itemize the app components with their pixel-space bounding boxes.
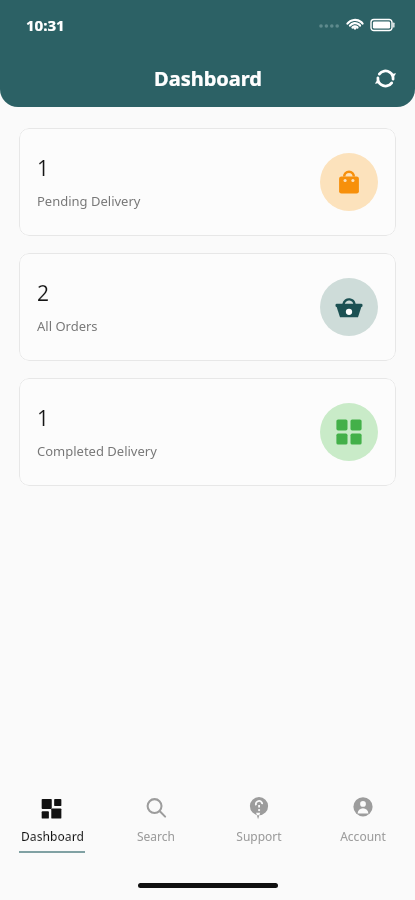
staticText: Completed Delivery [37,442,157,460]
staticText: Support [236,828,282,844]
button[interactable]: 1 [19,378,396,486]
button[interactable]: 2 [19,253,396,361]
staticText: Pending Delivery [37,192,141,210]
button[interactable]: Refresh [363,56,407,100]
staticText: Dashboard [21,828,84,844]
staticText: Search [137,828,175,844]
staticText: All Orders [37,317,98,335]
staticText: 10:31 [26,15,65,35]
button[interactable]: Dashboard [4,780,100,853]
staticText: 2 [37,279,50,308]
staticText: Account [340,828,386,844]
button[interactable]: Support [211,780,307,844]
button[interactable]: Search [108,780,204,844]
button[interactable]: Account [315,780,411,844]
button[interactable]: 1 [19,128,396,236]
staticText: 1 [37,154,50,183]
staticText: Dashboard [154,65,262,92]
staticText: 1 [37,404,50,433]
